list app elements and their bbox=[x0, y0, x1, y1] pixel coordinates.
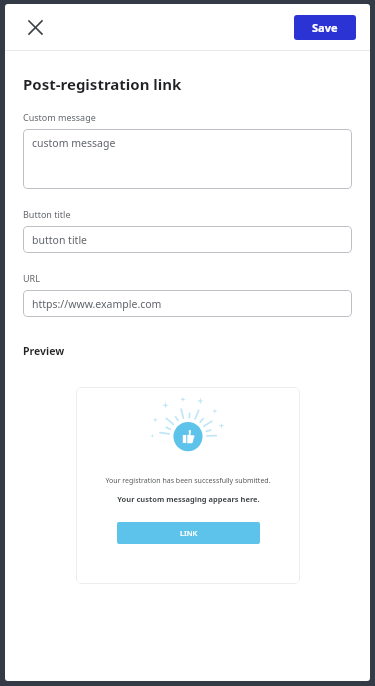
staticText: Your custom messaging appears here. bbox=[117, 494, 260, 504]
button[interactable]: Close bbox=[18, 10, 52, 44]
staticText: Save bbox=[312, 20, 338, 35]
button[interactable]: LINK bbox=[117, 522, 260, 544]
staticText: Preview bbox=[23, 344, 65, 358]
staticText: LINK bbox=[180, 528, 198, 538]
staticText: Your registration has been successfully … bbox=[105, 476, 271, 486]
button[interactable]: custom message bbox=[23, 129, 352, 189]
button[interactable]: Save bbox=[294, 15, 356, 40]
button[interactable]: https://www.example.com bbox=[23, 290, 352, 317]
staticText: https://www.example.com bbox=[32, 297, 162, 311]
staticText: button title bbox=[32, 233, 88, 247]
staticText: Post-registration link bbox=[23, 74, 182, 94]
staticText: URL bbox=[23, 272, 40, 284]
staticText: custom message bbox=[32, 136, 116, 150]
staticText: Custom message bbox=[23, 111, 96, 123]
button[interactable]: button title bbox=[23, 226, 352, 253]
staticText: Button title bbox=[23, 208, 71, 220]
